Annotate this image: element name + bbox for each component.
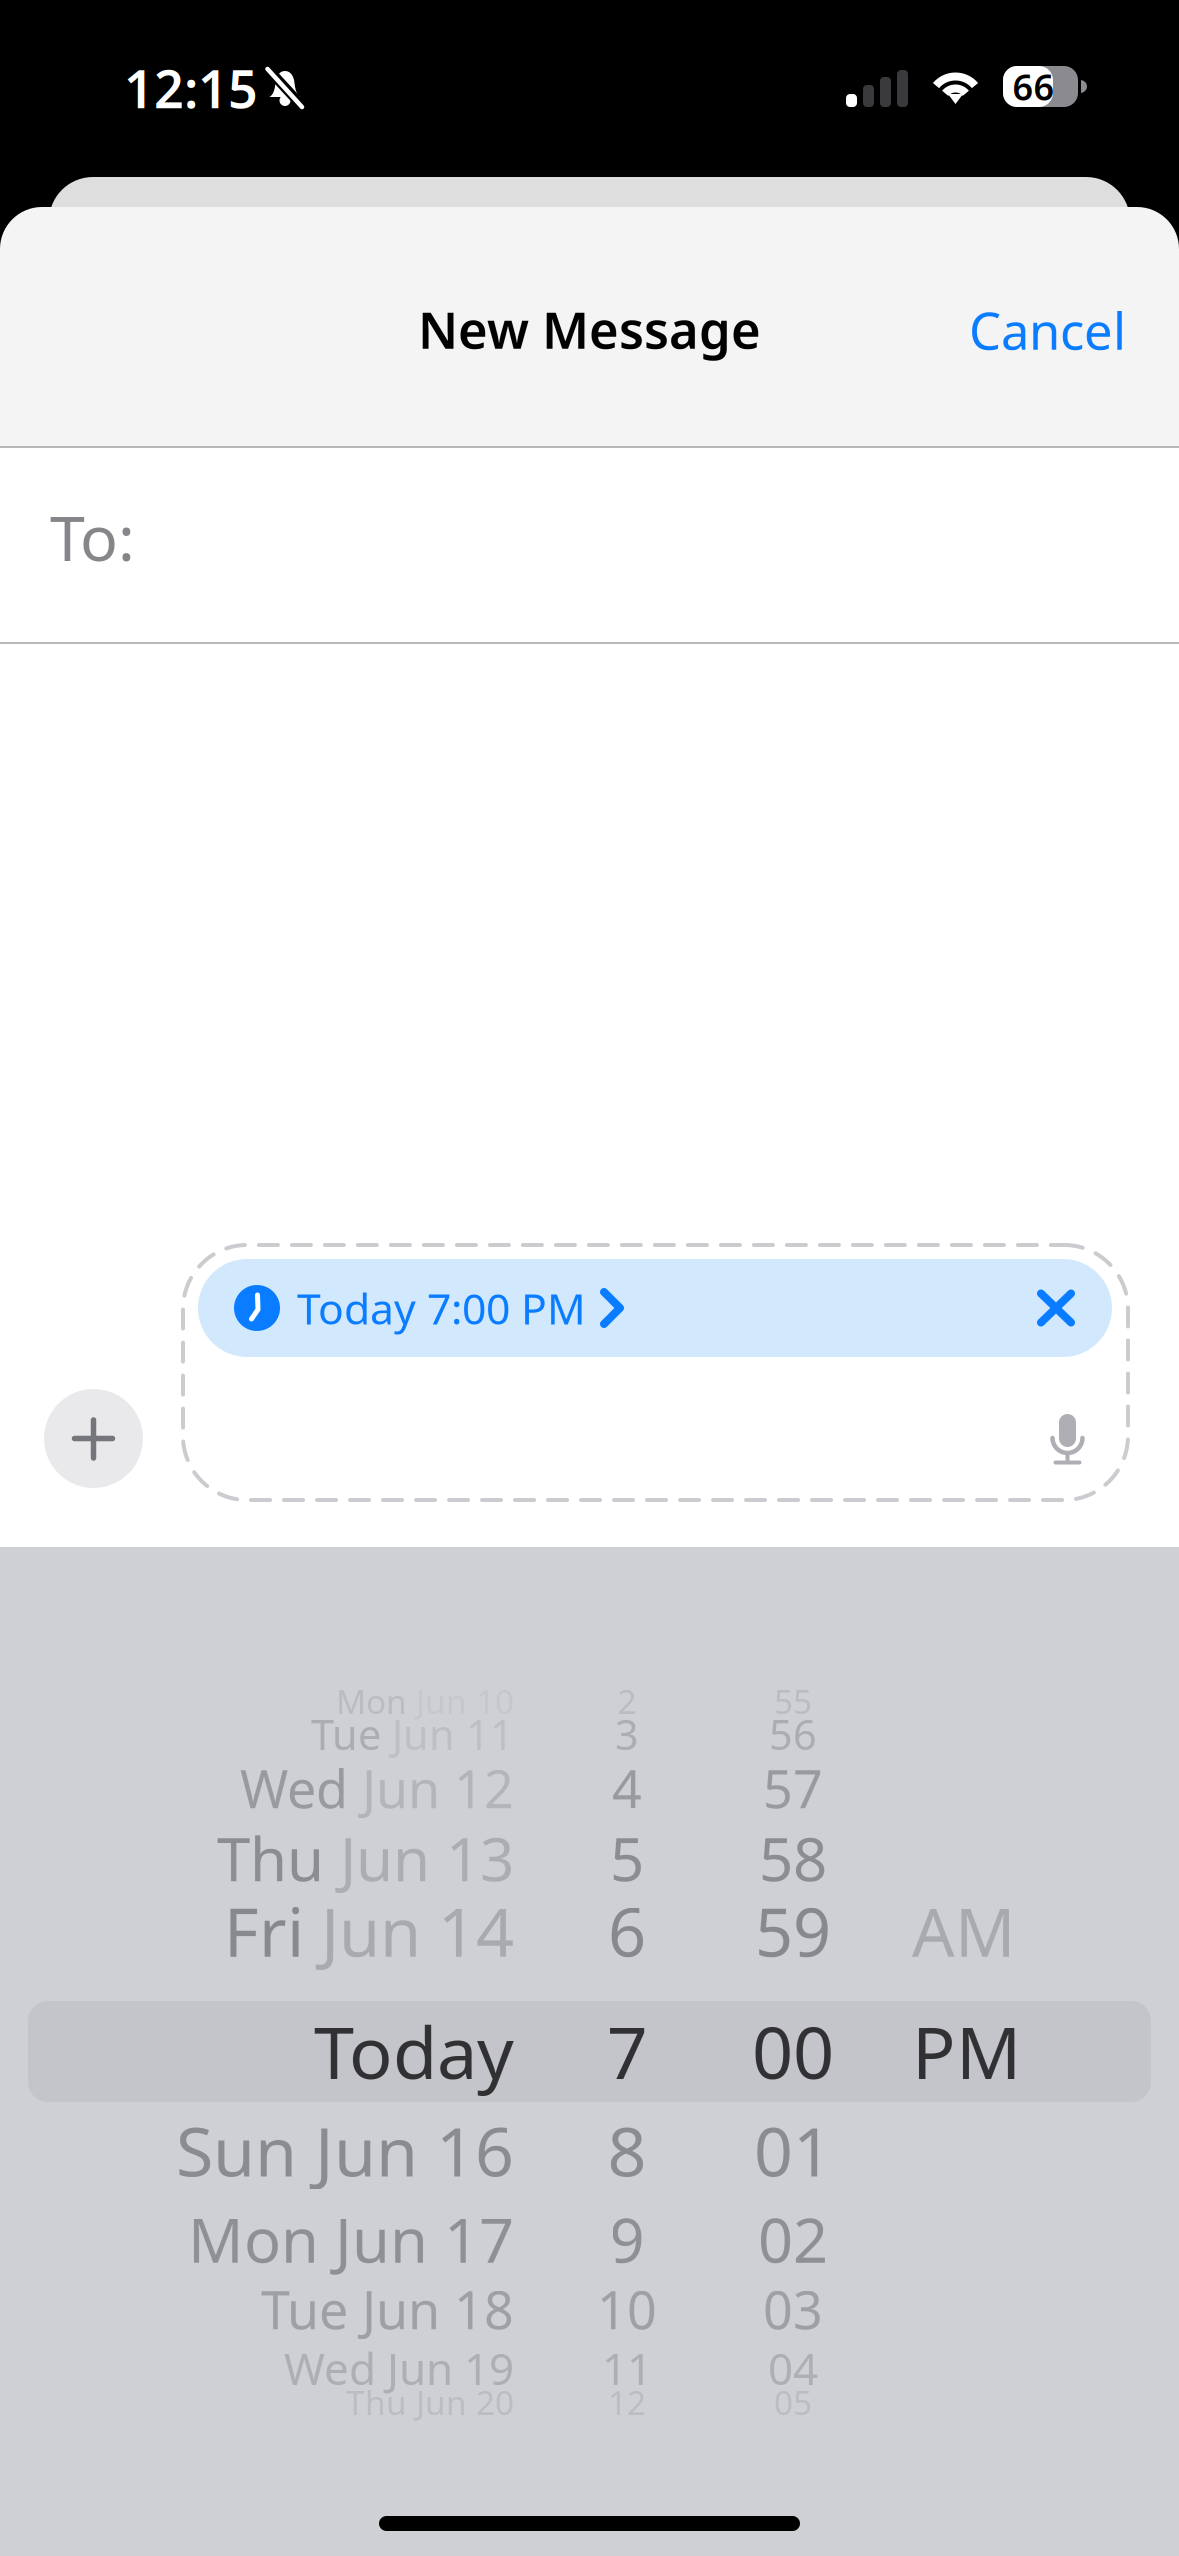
staticText: Jun 20	[407, 2380, 514, 2424]
staticText: Jun 18	[348, 2274, 514, 2344]
staticText: Mon	[188, 2198, 319, 2280]
staticText: 01	[754, 2105, 832, 2195]
staticText: 02	[758, 2198, 828, 2280]
staticText: 10	[597, 2274, 657, 2344]
staticText: 2	[617, 1679, 636, 1723]
staticText: 57	[763, 1753, 823, 1823]
staticText: 04	[768, 2339, 818, 2397]
staticText: 5	[610, 1818, 644, 1898]
staticText: 03	[763, 2274, 823, 2344]
staticText: Wed	[240, 1753, 348, 1823]
staticText: Jun 19	[376, 2339, 514, 2397]
staticText: 00	[752, 2003, 834, 2099]
staticText: 05	[774, 2380, 812, 2424]
staticText: 9	[609, 2198, 644, 2280]
staticText: New Message	[418, 295, 761, 363]
staticText: 55	[774, 1679, 812, 1723]
button[interactable]: Today 7:00 PM	[198, 1259, 1112, 1357]
staticText: 4	[612, 1753, 642, 1823]
button[interactable]: Cancel	[896, 270, 1179, 390]
staticText: 58	[759, 1818, 827, 1898]
staticText: Mon	[336, 1679, 407, 1723]
staticText: Today	[314, 2003, 514, 2099]
staticText: 12:15	[124, 53, 258, 123]
staticText: Jun 11	[381, 1707, 514, 1761]
staticText: Today 7:00 PM	[297, 1280, 586, 1336]
staticText: 56	[769, 1707, 817, 1761]
staticText: Tue	[261, 2274, 348, 2344]
staticText: 6	[608, 1887, 646, 1975]
staticText: Cancel	[969, 296, 1126, 364]
staticText: To:	[50, 495, 135, 578]
staticText: Wed	[284, 2339, 376, 2397]
staticText: 3	[615, 1707, 639, 1761]
staticText: Sun	[176, 2105, 297, 2195]
button[interactable]: Dictate	[1050, 1414, 1085, 1465]
staticText: Jun 17	[319, 2198, 514, 2280]
staticText: 12	[608, 2380, 646, 2424]
staticText: Thu	[346, 2380, 407, 2424]
staticText: 11	[602, 2339, 652, 2397]
staticText: Thu	[217, 1818, 324, 1898]
staticText: 7	[606, 2003, 647, 2099]
staticText: Jun 13	[324, 1818, 514, 1898]
staticText: Jun 16	[297, 2105, 514, 2195]
staticText: Jun 12	[348, 1753, 514, 1823]
staticText: Jun 14	[304, 1887, 514, 1975]
staticText: 59	[755, 1887, 831, 1975]
button[interactable]: Add attachment	[44, 1388, 143, 1489]
staticText: PM	[912, 2003, 1021, 2099]
staticText: 66	[1012, 63, 1054, 110]
staticText: AM	[912, 1887, 1015, 1975]
staticText: Fri	[224, 1887, 304, 1975]
staticText: Tue	[311, 1707, 381, 1761]
staticText: 8	[607, 2105, 646, 2195]
